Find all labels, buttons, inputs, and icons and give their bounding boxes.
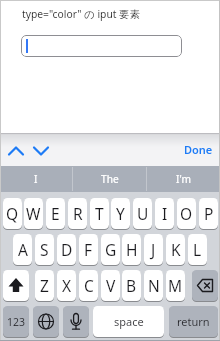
staticText: D bbox=[61, 239, 73, 260]
button[interactable]: N bbox=[144, 270, 163, 301]
button[interactable]: H bbox=[122, 234, 141, 265]
staticText: type="color" の iput 要素 bbox=[22, 7, 140, 21]
staticText: Done bbox=[184, 142, 213, 157]
button[interactable]: return bbox=[169, 306, 218, 337]
button[interactable]: C bbox=[79, 270, 98, 301]
staticText: I'm bbox=[176, 172, 191, 186]
staticText: R bbox=[73, 203, 83, 224]
button[interactable] bbox=[30, 142, 54, 160]
button[interactable] bbox=[192, 270, 218, 301]
staticText: M bbox=[168, 275, 183, 296]
staticText: return bbox=[177, 314, 210, 329]
staticText: X bbox=[62, 275, 72, 296]
staticText: U bbox=[137, 203, 149, 224]
button[interactable]: F bbox=[79, 234, 98, 265]
button[interactable]: T bbox=[90, 198, 109, 229]
button[interactable]: Q bbox=[3, 198, 22, 229]
button[interactable]: Z bbox=[35, 270, 54, 301]
button[interactable] bbox=[63, 306, 89, 337]
button[interactable] bbox=[33, 306, 59, 337]
staticText: Z bbox=[40, 275, 49, 296]
staticText: L bbox=[193, 239, 202, 260]
staticText: N bbox=[148, 275, 160, 296]
staticText: I bbox=[162, 203, 168, 224]
staticText: J bbox=[151, 239, 156, 260]
staticText: E bbox=[51, 203, 60, 224]
staticText: O bbox=[180, 203, 193, 224]
staticText: T bbox=[95, 203, 104, 224]
button[interactable]: B bbox=[122, 270, 141, 301]
button[interactable]: D bbox=[57, 234, 76, 265]
staticText: A bbox=[18, 239, 28, 260]
button[interactable]: P bbox=[199, 198, 218, 229]
staticText: P bbox=[204, 203, 214, 224]
staticText: The bbox=[101, 172, 119, 186]
button[interactable]: K bbox=[166, 234, 185, 265]
staticText: H bbox=[126, 239, 138, 260]
button[interactable]: V bbox=[101, 270, 120, 301]
button[interactable]: Y bbox=[111, 198, 130, 229]
button[interactable]: The bbox=[73, 166, 146, 192]
staticText: B bbox=[126, 275, 137, 296]
button[interactable]: I bbox=[0, 166, 72, 192]
button[interactable]: J bbox=[144, 234, 163, 265]
button[interactable]: space bbox=[93, 306, 164, 337]
staticText: I bbox=[34, 172, 38, 186]
staticText: Q bbox=[6, 203, 19, 224]
button[interactable]: Done bbox=[184, 133, 213, 166]
button[interactable]: M bbox=[166, 270, 185, 301]
button[interactable]: U bbox=[133, 198, 152, 229]
button[interactable]: A bbox=[13, 234, 32, 265]
staticText: K bbox=[171, 239, 181, 260]
button[interactable]: L bbox=[188, 234, 207, 265]
button[interactable] bbox=[4, 142, 28, 160]
button[interactable]: W bbox=[24, 198, 43, 229]
staticText: C bbox=[84, 275, 94, 296]
staticText: 123 bbox=[7, 315, 26, 329]
button[interactable]: S bbox=[35, 234, 54, 265]
button[interactable]: I bbox=[155, 198, 174, 229]
staticText: S bbox=[40, 239, 49, 260]
staticText: G bbox=[105, 239, 117, 260]
button[interactable]: O bbox=[177, 198, 196, 229]
button[interactable]: 123 bbox=[3, 306, 29, 337]
button[interactable]: X bbox=[57, 270, 76, 301]
button[interactable]: G bbox=[101, 234, 120, 265]
button[interactable] bbox=[3, 270, 29, 301]
staticText: space bbox=[114, 314, 144, 329]
button[interactable]: E bbox=[46, 198, 65, 229]
staticText: F bbox=[84, 239, 93, 260]
staticText: W bbox=[26, 203, 41, 224]
button[interactable]: R bbox=[68, 198, 87, 229]
staticText: Y bbox=[116, 203, 125, 224]
button[interactable] bbox=[21, 35, 182, 57]
staticText: V bbox=[106, 275, 116, 296]
button[interactable]: I'm bbox=[147, 166, 220, 192]
